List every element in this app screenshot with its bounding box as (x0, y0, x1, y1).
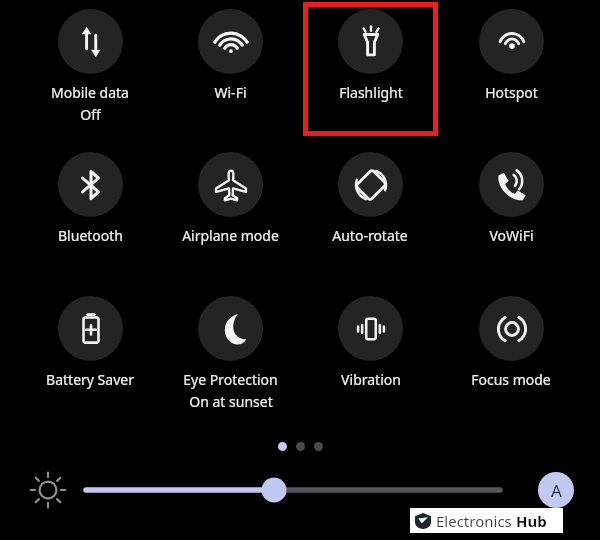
staticText: Eye Protection (183, 370, 278, 389)
staticText: Wi-Fi (214, 83, 247, 102)
button[interactable]: VoWiFi (441, 152, 581, 264)
button[interactable]: Focus mode (441, 296, 581, 408)
staticText: Hub (516, 511, 547, 531)
staticText: Battery Saver (46, 370, 134, 389)
button[interactable]: Auto-rotate (300, 152, 440, 264)
button[interactable]: Hotspot (441, 9, 581, 121)
button[interactable]: Wi-Fi (160, 9, 300, 121)
staticText: Airplane mode (182, 226, 279, 245)
staticText: Focus mode (471, 370, 551, 389)
button[interactable]: Bluetooth (20, 152, 160, 264)
staticText: Flashlight (339, 83, 403, 102)
staticText: Hotspot (485, 83, 538, 102)
button[interactable]: Auto brightness (538, 472, 574, 508)
button[interactable]: Vibration (300, 296, 440, 408)
staticText: On at sunset (189, 392, 273, 408)
staticText: VoWiFi (489, 226, 534, 245)
button[interactable]: Brightness (27, 469, 69, 511)
button[interactable]: Battery Saver (20, 296, 160, 408)
staticText: Bluetooth (58, 226, 123, 245)
staticText: Off (80, 105, 101, 121)
button[interactable]: Eye Protection (160, 296, 300, 408)
button[interactable]: Flashlight (300, 9, 440, 121)
button[interactable]: Airplane mode (160, 152, 300, 264)
staticText: A (551, 479, 562, 502)
button[interactable]: Brightness slider (84, 472, 524, 508)
staticText: Auto-rotate (332, 226, 408, 245)
staticText: Electronics (436, 511, 516, 531)
button[interactable]: Mobile data (20, 9, 160, 121)
staticText: Vibration (341, 370, 401, 389)
staticText: Mobile data (51, 83, 129, 102)
